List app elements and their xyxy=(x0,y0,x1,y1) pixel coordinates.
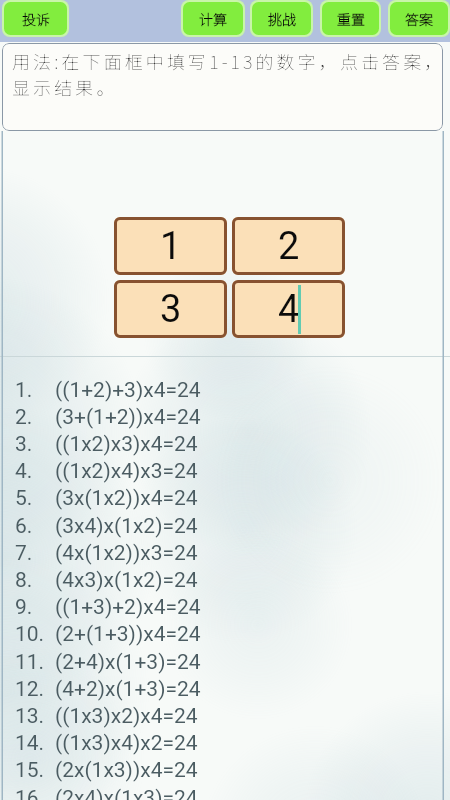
staticText: 1. xyxy=(15,378,55,403)
button[interactable]: 挑战 xyxy=(252,2,311,35)
staticText: 1 xyxy=(160,224,182,269)
staticText: (2x(1x3))x4=24 xyxy=(55,758,198,783)
staticText: 8. xyxy=(15,568,55,593)
staticText: 计算 xyxy=(199,9,227,29)
button[interactable]: 3 xyxy=(114,280,227,338)
staticText: 7. xyxy=(15,541,55,566)
staticText: (4x(1x2))x3=24 xyxy=(55,541,198,566)
button[interactable]: 重置 xyxy=(322,2,379,35)
staticText: 15. xyxy=(15,758,55,783)
staticText: (3x4)x(1x2)=24 xyxy=(55,514,198,539)
staticText: ((1+2)+3)x4=24 xyxy=(55,378,201,403)
staticText: 显示结果。 xyxy=(12,74,118,100)
button[interactable]: 6. xyxy=(0,513,450,540)
button[interactable]: 10. xyxy=(0,621,450,648)
button[interactable]: 7. xyxy=(0,540,450,567)
staticText: (3x(1x2))x4=24 xyxy=(55,486,198,511)
button[interactable]: 11. xyxy=(0,649,450,676)
staticText: 16. xyxy=(15,786,55,800)
staticText: 5. xyxy=(15,486,55,511)
staticText: 12. xyxy=(15,677,55,702)
staticText: 14. xyxy=(15,731,55,756)
staticText: 3. xyxy=(15,432,55,457)
button[interactable]: 14. xyxy=(0,730,450,757)
button[interactable]: 投诉 xyxy=(4,2,67,35)
button[interactable]: 16. xyxy=(0,785,450,800)
staticText: 4. xyxy=(15,459,55,484)
button[interactable]: 2. xyxy=(0,404,450,431)
staticText: 4 xyxy=(278,287,300,332)
staticText: 10. xyxy=(15,622,55,647)
staticText: (2+4)x(1+3)=24 xyxy=(55,650,201,675)
staticText: 用法:在下面框中填写1-13的数字，点击答案， xyxy=(12,48,439,74)
button[interactable]: 答案 xyxy=(390,2,448,35)
staticText: 挑战 xyxy=(268,9,296,29)
staticText: 6. xyxy=(15,514,55,539)
button[interactable]: 3. xyxy=(0,431,450,458)
staticText: ((1x2)x4)x3=24 xyxy=(55,459,198,484)
staticText: (2x4)x(1x3)=24 xyxy=(55,786,198,800)
staticText: (3+(1+2))x4=24 xyxy=(55,405,201,430)
button[interactable]: 1 xyxy=(114,217,227,275)
button[interactable]: 15. xyxy=(0,757,450,784)
staticText: 11. xyxy=(15,650,55,675)
button[interactable]: 1. xyxy=(0,377,450,404)
staticText: 13. xyxy=(15,704,55,729)
staticText: 投诉 xyxy=(22,9,50,29)
staticText: 答案 xyxy=(405,9,433,29)
staticText: 3 xyxy=(160,287,182,332)
staticText: (4x3)x(1x2)=24 xyxy=(55,568,198,593)
staticText: (4+2)x(1+3)=24 xyxy=(55,677,201,702)
button[interactable]: 4. xyxy=(0,458,450,485)
staticText: ((1x3)x4)x2=24 xyxy=(55,731,198,756)
button[interactable]: 4 xyxy=(232,280,345,338)
staticText: 2. xyxy=(15,405,55,430)
button[interactable]: 计算 xyxy=(183,2,243,35)
staticText: (2+(1+3))x4=24 xyxy=(55,622,201,647)
staticText: 2 xyxy=(278,224,300,269)
button[interactable]: 9. xyxy=(0,594,450,621)
staticText: ((1x2)x3)x4=24 xyxy=(55,432,198,457)
staticText: ((1+3)+2)x4=24 xyxy=(55,595,201,620)
button[interactable]: 5. xyxy=(0,485,450,512)
button[interactable]: 12. xyxy=(0,676,450,703)
button[interactable]: 13. xyxy=(0,703,450,730)
staticText: 重置 xyxy=(337,9,365,29)
staticText: 9. xyxy=(15,595,55,620)
button[interactable]: 8. xyxy=(0,567,450,594)
button[interactable]: 2 xyxy=(232,217,345,275)
staticText: ((1x3)x2)x4=24 xyxy=(55,704,198,729)
